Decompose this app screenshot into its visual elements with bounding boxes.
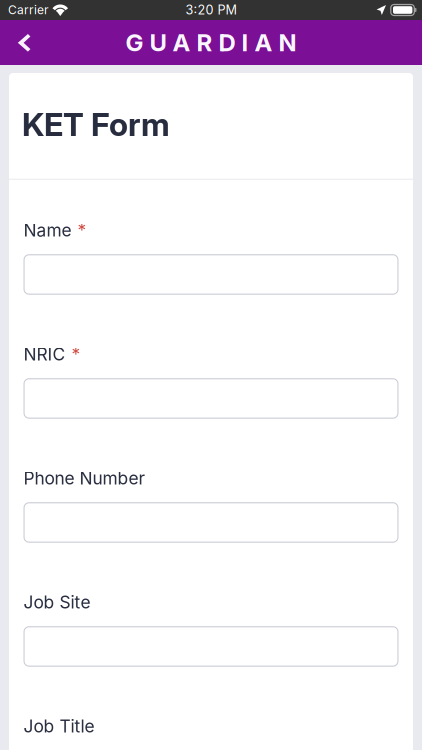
staticText: * [71,344,80,365]
button[interactable]: NRIC [23,378,398,419]
button[interactable]: Phone Number [23,502,398,543]
staticText: Name [23,220,71,241]
staticText: GUARDIAN [125,28,296,57]
button[interactable]: Job Site [23,626,398,667]
staticText: Carrier [8,3,49,17]
button[interactable]: Name [23,254,398,295]
staticText: Phone Number [23,468,145,489]
staticText: Job Title [23,716,94,737]
staticText: NRIC [23,344,65,365]
button[interactable]: Back [0,20,45,65]
staticText: 3:20 PM [185,2,236,18]
staticText: KET Form [22,105,170,144]
staticText: Job Site [23,592,90,613]
staticText: * [77,220,86,241]
